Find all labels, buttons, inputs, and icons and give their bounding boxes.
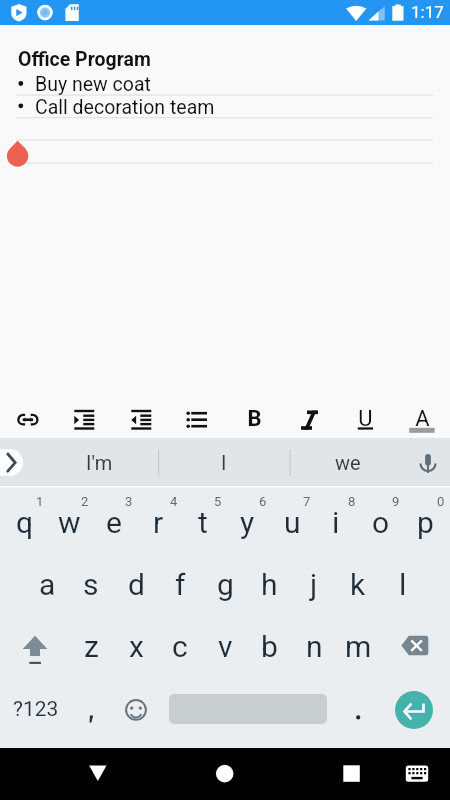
staticText: Call decoration team: [35, 96, 215, 119]
staticText: Office Program: [18, 48, 151, 71]
staticText: 2: [81, 494, 89, 509]
staticText: U: [358, 406, 373, 432]
staticText: Buy new coat: [35, 73, 151, 96]
button[interactable]: Enter: [395, 691, 433, 729]
staticText: y: [240, 505, 255, 540]
button[interactable]: q: [3, 500, 47, 544]
staticText: h: [261, 567, 278, 602]
staticText: 1:17: [411, 2, 444, 22]
staticText: 9: [392, 494, 400, 509]
button[interactable]: t: [181, 500, 225, 544]
button[interactable]: Recents: [328, 748, 374, 800]
staticText: ?123: [13, 697, 59, 722]
staticText: d: [128, 567, 145, 602]
staticText: I: [221, 451, 227, 474]
staticText: 1: [36, 494, 44, 509]
button[interactable]: B: [233, 398, 275, 440]
button[interactable]: e: [92, 500, 136, 544]
staticText: 3: [125, 494, 133, 509]
button[interactable]: Format option: [289, 398, 331, 440]
button[interactable]: Voice input: [410, 444, 446, 480]
staticText: v: [218, 629, 233, 664]
staticText: c: [172, 629, 188, 664]
button[interactable]: l: [381, 562, 425, 606]
button[interactable]: Emoji: [114, 687, 158, 731]
staticText: b: [261, 629, 278, 664]
staticText: 8: [348, 494, 356, 509]
staticText: n: [306, 629, 323, 664]
button[interactable]: Expand toolbar: [0, 449, 23, 476]
button[interactable]: f: [158, 562, 202, 606]
staticText: m: [345, 629, 372, 664]
staticText: p: [417, 505, 434, 540]
button[interactable]: Switch keyboard: [394, 748, 440, 800]
button[interactable]: u: [270, 500, 314, 544]
staticText: 7: [303, 494, 311, 509]
button[interactable]: r: [136, 500, 180, 544]
button[interactable]: c: [158, 624, 202, 668]
staticText: u: [284, 505, 301, 540]
button[interactable]: h: [247, 562, 291, 606]
button[interactable]: Format option: [63, 398, 105, 440]
button[interactable]: y: [225, 500, 269, 544]
button[interactable]: U: [344, 398, 386, 440]
button[interactable]: m: [336, 624, 380, 668]
button[interactable]: o: [359, 500, 403, 544]
staticText: I'm: [86, 451, 113, 474]
staticText: k: [350, 567, 366, 602]
button[interactable]: ?123: [8, 687, 64, 731]
staticText: i: [332, 505, 340, 540]
staticText: z: [84, 629, 99, 664]
button[interactable]: Format option: [177, 398, 219, 440]
button[interactable]: n: [292, 624, 336, 668]
staticText: r: [153, 505, 164, 540]
button[interactable]: a: [25, 562, 69, 606]
button[interactable]: I: [169, 438, 279, 486]
button[interactable]: I'm: [44, 438, 154, 486]
button[interactable]: d: [114, 562, 158, 606]
button[interactable]: b: [247, 624, 291, 668]
button[interactable]: Back: [75, 748, 121, 800]
staticText: l: [399, 567, 407, 602]
staticText: 5: [214, 494, 222, 509]
button[interactable]: g: [203, 562, 247, 606]
staticText: g: [217, 567, 234, 602]
button[interactable]: j: [292, 562, 336, 606]
button[interactable]: Format option: [7, 398, 49, 440]
staticText: f: [175, 567, 186, 602]
button[interactable]: i: [314, 500, 358, 544]
staticText: o: [372, 505, 390, 540]
button[interactable]: p: [403, 500, 447, 544]
staticText: s: [83, 567, 99, 602]
button[interactable]: Home: [202, 748, 248, 800]
staticText: a: [39, 567, 56, 602]
staticText: B: [247, 406, 262, 432]
button[interactable]: [336, 687, 380, 731]
button[interactable]: x: [114, 624, 158, 668]
button[interactable]: z: [69, 624, 113, 668]
button[interactable]: w: [47, 500, 91, 544]
button[interactable]: A: [401, 398, 443, 440]
button[interactable]: Shift: [4, 618, 66, 674]
staticText: 4: [170, 494, 178, 509]
staticText: x: [129, 629, 144, 664]
staticText: we: [335, 451, 361, 474]
button[interactable]: Format option: [120, 398, 162, 440]
button[interactable]: s: [69, 562, 113, 606]
staticText: 0: [437, 494, 445, 509]
staticText: j: [310, 567, 318, 602]
staticText: e: [106, 505, 122, 540]
staticText: A: [415, 406, 430, 432]
button[interactable]: k: [336, 562, 380, 606]
staticText: q: [16, 505, 34, 540]
button[interactable]: we: [293, 438, 403, 486]
staticText: t: [198, 505, 208, 540]
button[interactable]: v: [203, 624, 247, 668]
staticText: w: [58, 505, 81, 540]
staticText: 6: [259, 494, 267, 509]
button[interactable]: Backspace: [392, 620, 440, 672]
button[interactable]: [69, 687, 113, 731]
